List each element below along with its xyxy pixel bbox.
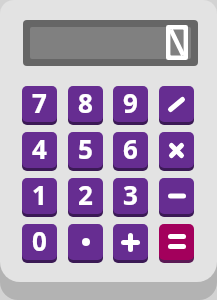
staticText: 5	[78, 132, 93, 166]
button[interactable]: 9	[113, 86, 148, 124]
button[interactable]: 0	[22, 224, 57, 262]
button[interactable]: 5	[68, 132, 103, 170]
button[interactable]: Multiply	[159, 132, 194, 170]
button[interactable]: 2	[68, 178, 103, 216]
staticText: 0	[32, 224, 47, 258]
button[interactable]: 8	[68, 86, 103, 124]
button[interactable]: Decimal point	[68, 224, 103, 262]
button[interactable]: 1	[22, 178, 57, 216]
button[interactable]: Divide	[159, 86, 194, 124]
button[interactable]: 7	[22, 86, 57, 124]
staticText: 9	[123, 86, 138, 120]
button[interactable]: 6	[113, 132, 148, 170]
button[interactable]: Add	[113, 224, 148, 262]
button[interactable]: Subtract	[159, 178, 194, 216]
staticText: 7	[32, 86, 47, 120]
button[interactable]: 3	[113, 178, 148, 216]
staticText: 1	[32, 178, 47, 212]
staticText: 4	[32, 132, 47, 166]
staticText: 3	[123, 178, 138, 212]
button[interactable]: 4	[22, 132, 57, 170]
staticText: 2	[78, 178, 93, 212]
staticText: 6	[123, 132, 138, 166]
staticText: 8	[78, 86, 93, 120]
button[interactable]: Equals	[159, 224, 194, 262]
